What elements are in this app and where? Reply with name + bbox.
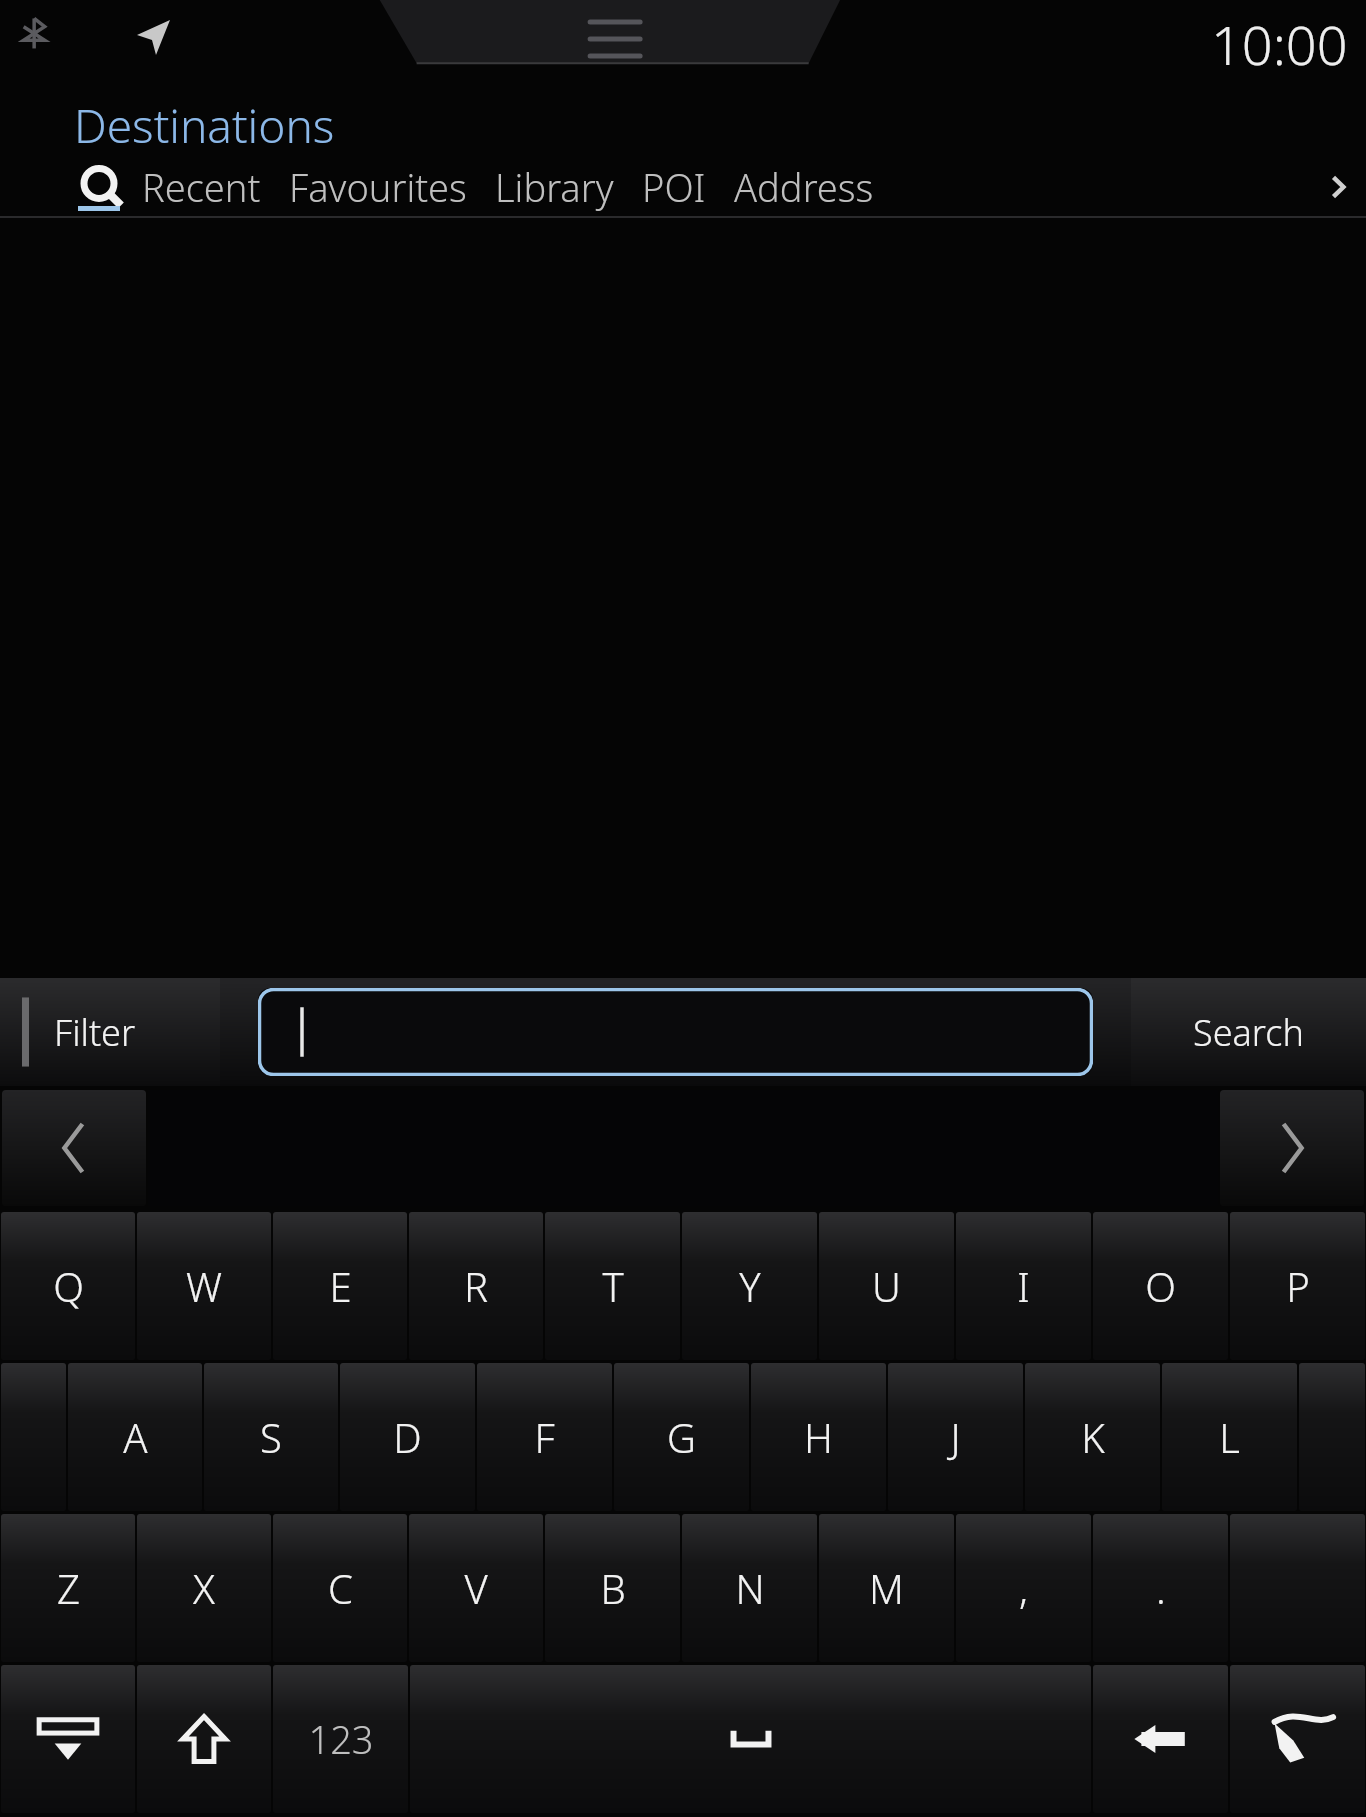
staticText: Destinations	[74, 94, 335, 157]
button[interactable]: More tabs	[1310, 157, 1366, 217]
button[interactable]: Z	[1, 1514, 135, 1662]
staticText: Y	[739, 1259, 761, 1313]
staticText: Favourites	[289, 161, 467, 213]
staticText: I	[1017, 1259, 1030, 1313]
staticText: L	[1219, 1410, 1240, 1464]
button[interactable]: E	[273, 1212, 407, 1360]
staticText: E	[329, 1259, 352, 1313]
button[interactable]: Recent	[142, 161, 261, 213]
staticText: 123	[308, 1713, 374, 1765]
button[interactable]: Filter	[0, 978, 220, 1086]
button[interactable]: S	[204, 1363, 338, 1511]
button[interactable]: M	[819, 1514, 954, 1662]
button[interactable]: .	[1093, 1514, 1228, 1662]
button[interactable]: Q	[1, 1212, 135, 1360]
button[interactable]: G	[614, 1363, 749, 1511]
staticText: S	[260, 1410, 282, 1464]
staticText: A	[123, 1410, 148, 1464]
button[interactable]: Favourites	[289, 161, 467, 213]
staticText: T	[602, 1259, 624, 1313]
button[interactable]: Handwriting input	[1230, 1665, 1365, 1813]
staticText: M	[869, 1561, 904, 1615]
button[interactable]: Search	[1131, 978, 1366, 1086]
staticText: G	[667, 1410, 696, 1464]
button[interactable]: Backspace	[1093, 1665, 1228, 1813]
button[interactable]: Space	[410, 1665, 1091, 1813]
staticText: Z	[57, 1561, 80, 1615]
staticText: J	[950, 1410, 961, 1464]
staticText: X	[193, 1561, 215, 1615]
button[interactable]: V	[409, 1514, 543, 1662]
button[interactable]: W	[137, 1212, 271, 1360]
button[interactable]: H	[751, 1363, 886, 1511]
staticText: H	[804, 1410, 833, 1464]
button[interactable]: Library	[495, 161, 614, 213]
button[interactable]: K	[1025, 1363, 1160, 1511]
staticText: N	[735, 1561, 765, 1615]
button[interactable]: I	[956, 1212, 1091, 1360]
staticText: W	[186, 1259, 222, 1313]
button[interactable]	[258, 988, 1093, 1076]
button[interactable]: O	[1093, 1212, 1228, 1360]
staticText: .	[1156, 1561, 1166, 1615]
button[interactable]: A	[68, 1363, 202, 1511]
staticText: Filter	[54, 1008, 136, 1057]
button[interactable]: F	[477, 1363, 612, 1511]
button[interactable]: B	[545, 1514, 680, 1662]
button[interactable]: 123	[273, 1665, 408, 1813]
button[interactable]: X	[137, 1514, 271, 1662]
staticText: O	[1145, 1259, 1176, 1313]
staticText: K	[1081, 1410, 1105, 1464]
button[interactable]: Y	[682, 1212, 817, 1360]
button[interactable]: Search tab	[70, 157, 128, 217]
button[interactable]: Shift	[137, 1665, 271, 1813]
staticText: Library	[495, 161, 614, 213]
button[interactable]: N	[682, 1514, 817, 1662]
staticText: Search	[1193, 1008, 1304, 1057]
staticText: D	[393, 1410, 422, 1464]
staticText: Address	[734, 161, 874, 213]
staticText: F	[534, 1410, 555, 1464]
staticText: ,	[1019, 1561, 1028, 1615]
staticText: Q	[53, 1259, 84, 1313]
staticText: POI	[642, 161, 706, 213]
staticText: P	[1286, 1259, 1310, 1313]
button[interactable]: Next	[1220, 1090, 1364, 1206]
staticText: Recent	[142, 161, 261, 213]
button[interactable]: T	[545, 1212, 680, 1360]
staticText: U	[872, 1259, 901, 1313]
staticText: R	[464, 1259, 488, 1313]
button[interactable]: C	[273, 1514, 407, 1662]
button[interactable]: U	[819, 1212, 954, 1360]
staticText: 10:00	[1211, 7, 1348, 81]
button[interactable]: ,	[956, 1514, 1091, 1662]
button[interactable]: P	[1230, 1212, 1365, 1360]
button[interactable]: POI	[642, 161, 706, 213]
button[interactable]: Hide keyboard	[1, 1665, 135, 1813]
button[interactable]: Address	[734, 161, 874, 213]
button[interactable]: J	[888, 1363, 1023, 1511]
button[interactable]: L	[1162, 1363, 1297, 1511]
button[interactable]: R	[409, 1212, 543, 1360]
staticText: C	[328, 1561, 353, 1615]
button[interactable]: D	[340, 1363, 475, 1511]
staticText: B	[600, 1561, 626, 1615]
button[interactable]: Previous	[2, 1090, 146, 1206]
staticText: V	[464, 1561, 488, 1615]
